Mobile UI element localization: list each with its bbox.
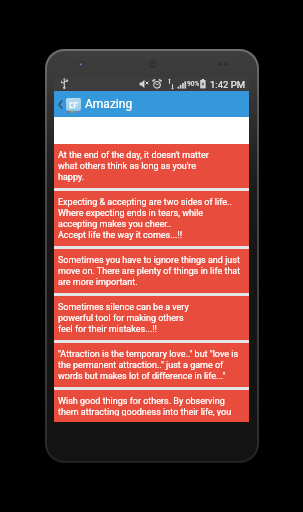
staticText: Sometimes you have to ignore things and … — [58, 254, 241, 287]
staticText: At the end of the day, it doesn't matter… — [58, 149, 209, 182]
staticText: Amazing — [85, 97, 133, 111]
button[interactable]: "Attraction is the temporary love.." but… — [54, 343, 249, 387]
button[interactable]: Navigate up — [54, 91, 66, 117]
button[interactable]: Sometimes silence can be a very powerful… — [54, 296, 249, 340]
button[interactable]: At the end of the day, it doesn't matter… — [54, 144, 249, 188]
staticText: "Attraction is the temporary love.." but… — [58, 348, 239, 381]
button[interactable]: Wish good things for others. By observin… — [54, 390, 249, 422]
staticText: 1:42 PM — [210, 79, 245, 90]
button[interactable]: Expecting & accepting are two sides of l… — [54, 191, 249, 246]
staticText: Expecting & accepting are two sides of l… — [58, 196, 232, 240]
staticText: Wish good things for others. By observin… — [58, 395, 232, 416]
staticText: Sometimes silence can be a very powerful… — [58, 301, 189, 334]
button[interactable]: Sometimes you have to ignore things and … — [54, 249, 249, 293]
staticText: 90% — [187, 80, 200, 88]
